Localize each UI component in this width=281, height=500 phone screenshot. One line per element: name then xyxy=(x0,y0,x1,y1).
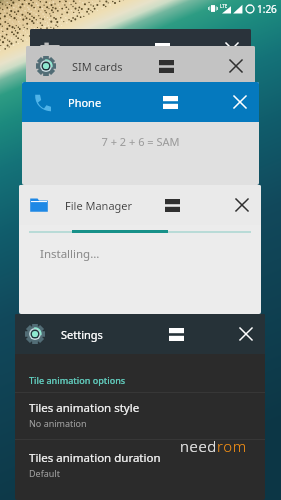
staticText: 7 + 2 + 6 = SAM xyxy=(22,134,259,149)
staticText: Camera xyxy=(76,42,117,57)
button[interactable]: Split screen xyxy=(150,46,182,86)
staticText: Settings xyxy=(61,327,103,342)
staticText: need xyxy=(180,436,217,456)
button[interactable]: Split screen xyxy=(154,82,186,122)
button[interactable]: SIM cards task xyxy=(26,46,255,86)
button[interactable]: Close task xyxy=(230,314,262,354)
staticText: Tile animation options xyxy=(29,374,126,386)
staticText: SIM cards xyxy=(72,59,123,74)
staticText: File Manager xyxy=(65,198,133,213)
staticText: LTE xyxy=(220,3,228,9)
button[interactable]: Split screen xyxy=(156,185,188,225)
button[interactable]: File Manager task xyxy=(19,185,261,314)
button[interactable]: Close task xyxy=(226,185,258,225)
button[interactable]: Close task xyxy=(224,82,256,122)
staticText: No animation xyxy=(29,417,87,429)
button[interactable]: Settings task xyxy=(15,314,265,500)
button[interactable]: Close task xyxy=(216,29,248,69)
staticText: Phone xyxy=(68,95,102,110)
button[interactable]: Split screen xyxy=(160,314,192,354)
button[interactable]: Close task xyxy=(220,46,252,86)
button[interactable]: Tiles animation duration xyxy=(15,440,265,490)
staticText: rom xyxy=(217,436,247,456)
button[interactable]: Split screen xyxy=(146,29,178,69)
button[interactable]: Phone task xyxy=(22,82,259,185)
button[interactable]: Tiles animation style xyxy=(15,393,265,439)
staticText: Tiles animation duration xyxy=(29,450,161,466)
staticText: 1:26 xyxy=(257,2,277,16)
staticText: Default xyxy=(29,467,60,479)
staticText: Tiles animation style xyxy=(29,400,140,416)
button[interactable]: Camera task xyxy=(30,29,251,69)
staticText: Installing… xyxy=(40,246,100,262)
